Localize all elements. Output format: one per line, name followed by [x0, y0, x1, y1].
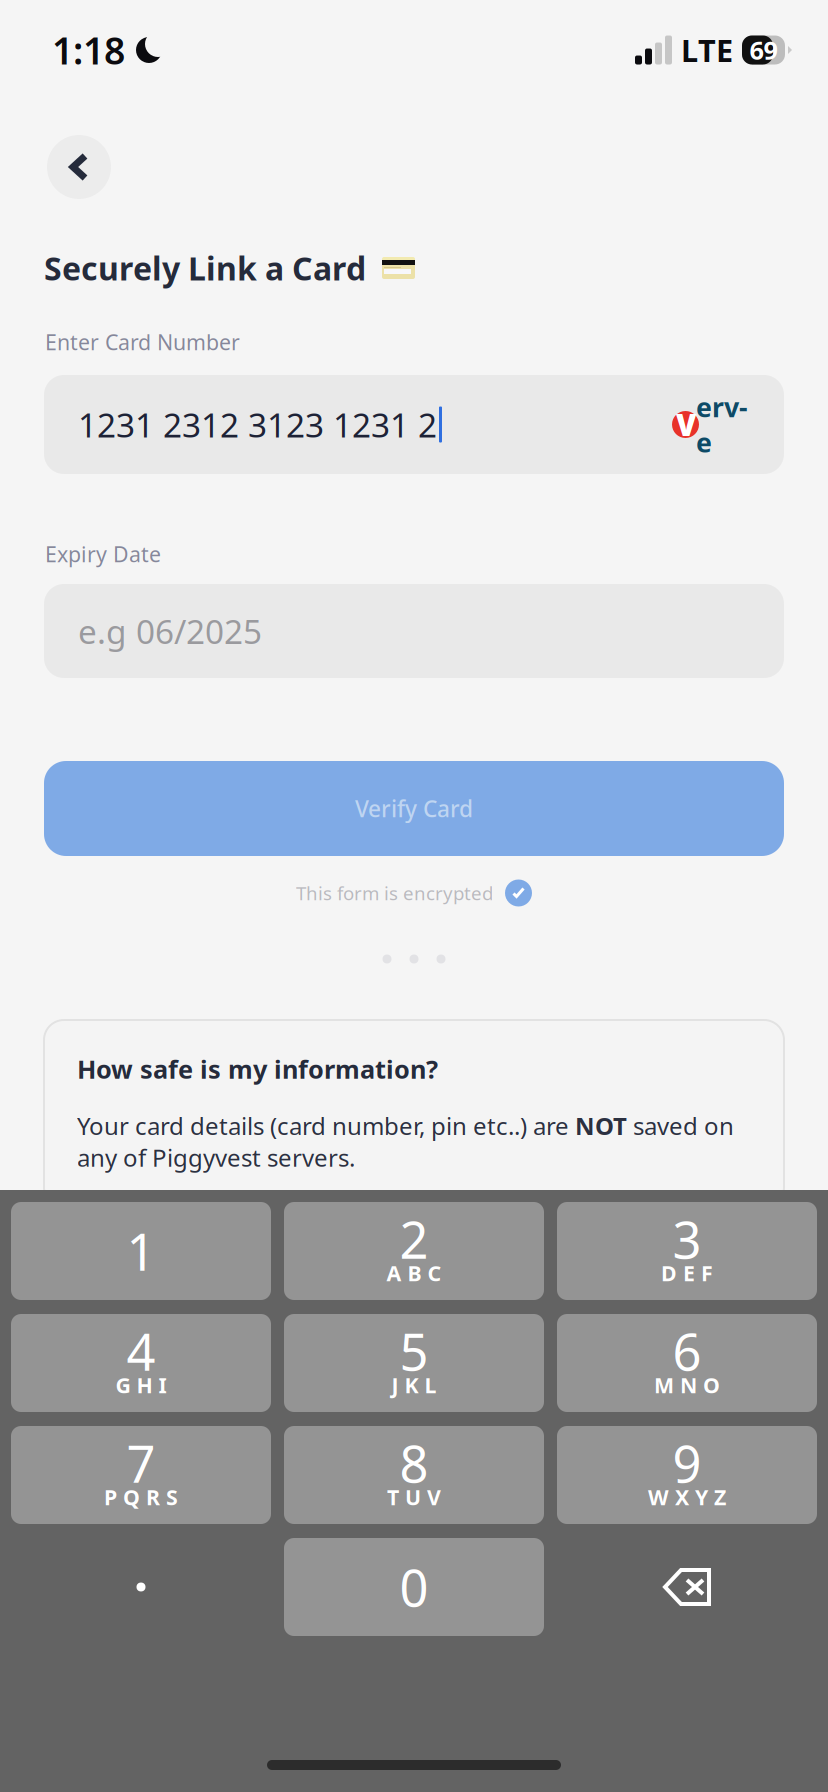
staticText: 9	[672, 1429, 701, 1497]
staticText: P Q R S	[104, 1483, 178, 1511]
staticText: 0	[399, 1553, 428, 1621]
staticText: Expiry Date	[45, 540, 161, 568]
staticText: A B C	[386, 1259, 441, 1287]
button[interactable]: 5	[284, 1314, 544, 1412]
staticText: D E F	[661, 1259, 713, 1287]
staticText: How safe is my information?	[77, 1052, 438, 1086]
button[interactable]: 2	[284, 1202, 544, 1300]
staticText: This form is encrypted	[296, 881, 493, 905]
button[interactable]: 3	[557, 1202, 817, 1300]
button[interactable]: 1	[11, 1202, 271, 1300]
staticText: 6	[672, 1317, 701, 1385]
staticText: Securely Link a Card	[44, 247, 366, 289]
staticText: 1:18	[52, 25, 125, 75]
staticText: LTE	[681, 30, 733, 70]
button[interactable]: 6	[557, 1314, 817, 1412]
staticText: 69	[749, 33, 777, 67]
staticText: any of Piggyvest servers.	[77, 1141, 355, 1173]
button[interactable]: Verify Card	[0, 761, 828, 856]
staticText: V	[676, 405, 696, 444]
button[interactable]: 4	[11, 1314, 271, 1412]
staticText: M N O	[654, 1371, 720, 1399]
button[interactable]: Delete	[557, 1538, 817, 1636]
staticText: 3	[672, 1205, 701, 1273]
staticText: 8	[399, 1429, 428, 1497]
staticText: Verify Card	[355, 793, 473, 823]
staticText: G H I	[115, 1371, 166, 1399]
staticText: 5	[399, 1317, 428, 1385]
staticText: Your card details (card number, pin etc.…	[77, 1110, 734, 1141]
staticText: erve	[696, 389, 748, 460]
staticText: J K L	[391, 1371, 436, 1399]
staticText: 2	[399, 1205, 428, 1273]
button[interactable]: 8	[284, 1426, 544, 1524]
staticText: 1	[126, 1217, 155, 1285]
button[interactable]: 0	[284, 1538, 544, 1636]
staticText: 1231 2312 3123 1231 2	[78, 402, 437, 447]
staticText: W X Y Z	[648, 1483, 726, 1511]
staticText: 7	[126, 1429, 155, 1497]
staticText: T U V	[387, 1483, 441, 1511]
staticText: 4	[126, 1317, 155, 1385]
staticText: e.g 06/2025	[78, 609, 262, 653]
staticText: Enter Card Number	[45, 328, 240, 356]
button[interactable]: 9	[557, 1426, 817, 1524]
button[interactable]: Decimal point	[11, 1538, 271, 1636]
button[interactable]: 7	[11, 1426, 271, 1524]
button[interactable]: Back	[47, 135, 111, 199]
